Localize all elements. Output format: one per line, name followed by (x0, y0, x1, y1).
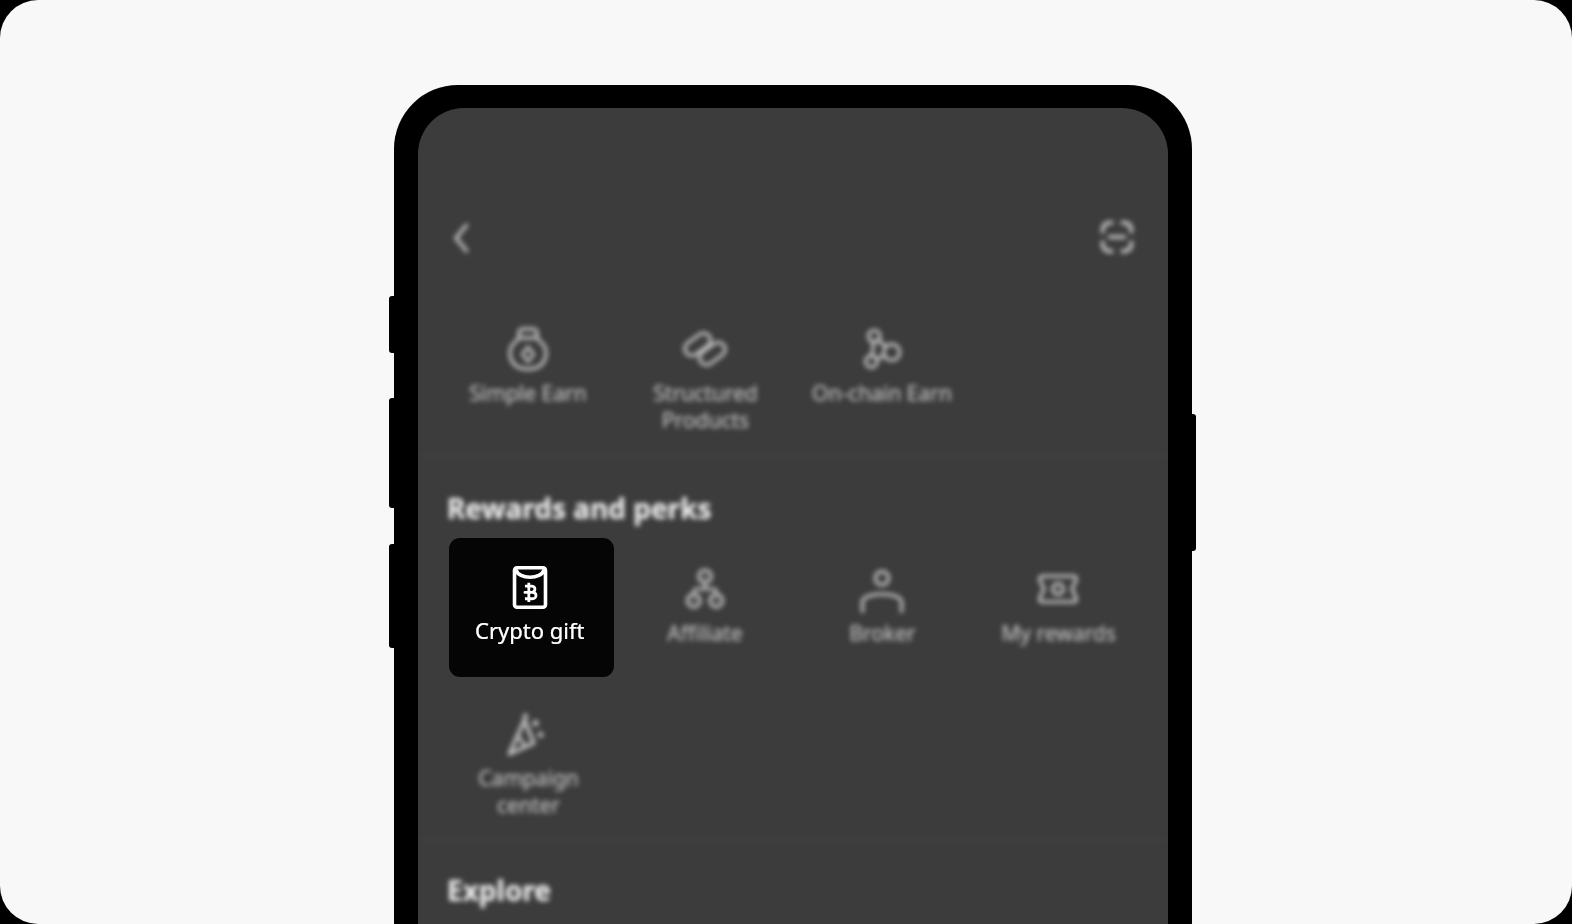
button[interactable]: Affiliate (617, 566, 793, 682)
button[interactable]: My rewards (970, 566, 1146, 682)
button[interactable]: Structured Products (617, 326, 793, 442)
staticText: Rewards and perks (447, 489, 712, 527)
staticText: Campaign center (478, 764, 579, 819)
button[interactable]: Crypto gift (440, 566, 616, 682)
button[interactable]: Campaign center (440, 711, 616, 827)
staticText: Crypto gift (476, 619, 581, 648)
staticText: Structured Products (653, 379, 758, 434)
button[interactable]: Scan (1091, 211, 1143, 263)
button[interactable]: Crypto gift (449, 538, 614, 677)
staticText: Crypto gift (475, 615, 585, 645)
button[interactable]: Broker (794, 566, 970, 682)
button[interactable]: Back (436, 212, 488, 264)
staticText: My rewards (1001, 619, 1116, 648)
staticText: Broker (849, 619, 916, 648)
staticText: Simple Earn (469, 379, 587, 408)
button[interactable]: On-chain Earn (794, 326, 970, 442)
staticText: Affiliate (667, 619, 743, 648)
staticText: On-chain Earn (812, 379, 952, 408)
staticText: Explore (447, 871, 552, 909)
button[interactable]: Simple Earn (440, 326, 616, 442)
